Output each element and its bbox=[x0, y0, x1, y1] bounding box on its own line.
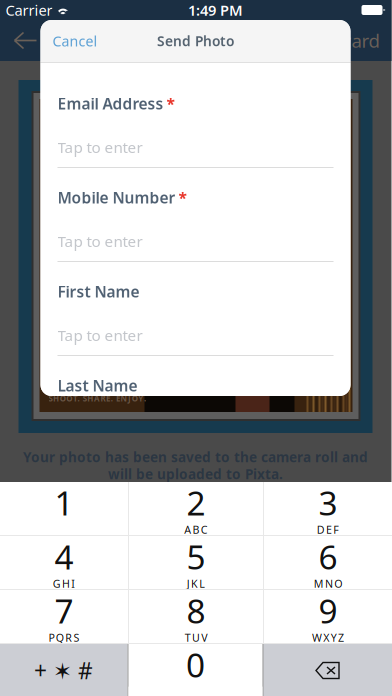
staticText: * bbox=[166, 93, 174, 114]
button[interactable]: 9 bbox=[264, 590, 392, 643]
button[interactable]: 3 bbox=[264, 482, 392, 535]
button[interactable]: 5 bbox=[129, 536, 263, 589]
staticText: 2 bbox=[186, 480, 205, 525]
staticText: Forward bbox=[307, 28, 379, 53]
staticText: TUV bbox=[185, 630, 207, 645]
staticText: Tap to enter bbox=[57, 325, 142, 345]
staticText: Last Name bbox=[57, 375, 137, 396]
staticText: 9 bbox=[318, 588, 337, 633]
staticText: 7 bbox=[54, 588, 73, 633]
button[interactable]: Tap to enter bbox=[57, 132, 333, 162]
button[interactable]: Forward bbox=[307, 28, 379, 53]
staticText: SHOOT. SHARE. ENJOY. bbox=[48, 393, 146, 404]
staticText: DEF bbox=[317, 522, 339, 537]
button[interactable]: 1 bbox=[0, 482, 128, 535]
button[interactable]: 8 bbox=[129, 590, 263, 643]
button[interactable]: Symbols bbox=[0, 644, 127, 696]
staticText: will be uploaded to Pixta. bbox=[108, 465, 283, 483]
staticText: * bbox=[178, 187, 186, 208]
button[interactable]: Back bbox=[11, 25, 41, 55]
staticText: WXYZ bbox=[312, 630, 344, 645]
staticText: 5 bbox=[186, 534, 205, 579]
staticText: 4 bbox=[54, 534, 73, 579]
button[interactable]: Tap to enter bbox=[57, 226, 333, 256]
button[interactable]: Cancel bbox=[52, 20, 97, 62]
staticText: Carrier bbox=[5, 0, 52, 20]
button[interactable]: 6 bbox=[264, 536, 392, 589]
staticText: MNO bbox=[314, 576, 342, 591]
staticText: 1 bbox=[54, 480, 73, 525]
staticText: GHI bbox=[53, 576, 75, 591]
staticText: PQRS bbox=[49, 630, 79, 645]
staticText: Mobile Number bbox=[57, 187, 175, 208]
staticText: Send Photo bbox=[157, 32, 234, 50]
staticText: JKL bbox=[187, 576, 205, 591]
button[interactable]: 0 bbox=[128, 644, 262, 696]
button[interactable]: Tap to enter bbox=[57, 320, 333, 350]
button[interactable]: 4 bbox=[0, 536, 128, 589]
staticText: Tap to enter bbox=[57, 137, 142, 157]
staticText: ABC bbox=[184, 522, 208, 537]
staticText: 3 bbox=[318, 480, 337, 525]
staticText: Email Address bbox=[57, 93, 163, 114]
button[interactable]: Delete bbox=[263, 644, 392, 696]
staticText: 0 bbox=[186, 642, 205, 687]
staticText: First Name bbox=[57, 281, 139, 302]
staticText: 6 bbox=[318, 534, 337, 579]
staticText: 1:49 PM bbox=[188, 0, 243, 20]
staticText: + ✶ # bbox=[34, 655, 93, 685]
button[interactable]: 2 bbox=[129, 482, 263, 535]
button[interactable]: 7 bbox=[0, 590, 128, 643]
staticText: Tap to enter bbox=[57, 231, 142, 251]
staticText: Cancel bbox=[52, 31, 97, 51]
staticText: 8 bbox=[186, 588, 205, 633]
staticText: Your photo has been saved to the camera … bbox=[23, 448, 368, 466]
